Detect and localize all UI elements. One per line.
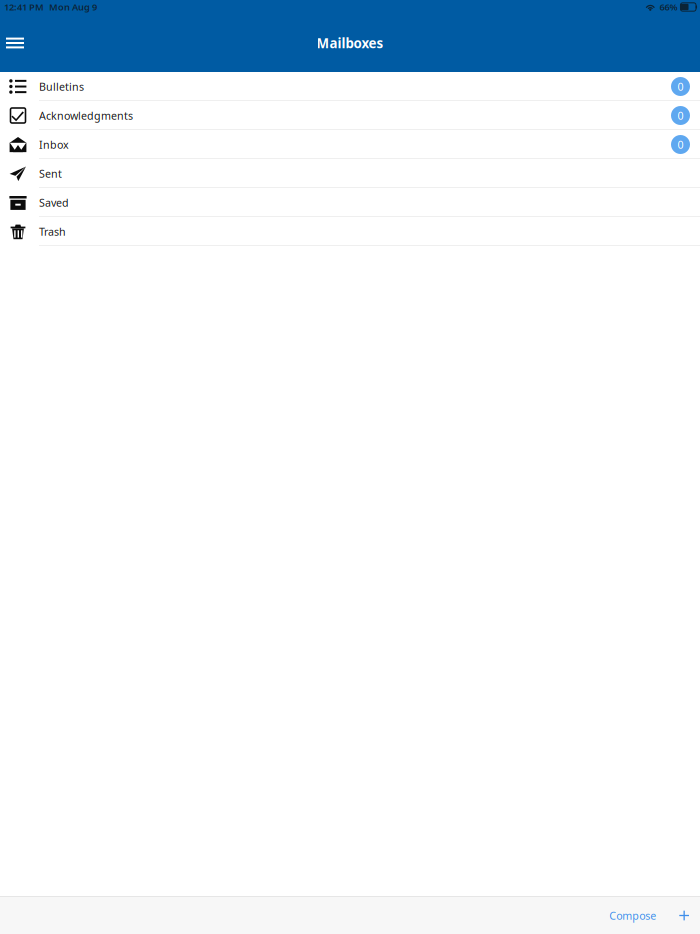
staticText: Bulletins — [39, 79, 84, 94]
button[interactable]: Menu — [0, 26, 30, 60]
button[interactable]: Trash — [0, 217, 700, 246]
staticText: Sent — [39, 166, 62, 181]
button[interactable]: Inbox — [0, 130, 700, 159]
staticText: Mailboxes — [316, 34, 383, 52]
staticText: 66% — [659, 1, 677, 13]
button[interactable]: New message — [664, 902, 700, 929]
staticText: 0 — [677, 108, 683, 123]
button[interactable]: Compose — [601, 899, 664, 932]
staticText: Compose — [609, 908, 656, 923]
staticText: Acknowledgments — [39, 108, 133, 123]
staticText: Inbox — [39, 137, 69, 152]
button[interactable]: Saved — [0, 188, 700, 217]
staticText: 12:41 PM — [4, 1, 44, 13]
button[interactable]: Acknowledgments — [0, 101, 700, 130]
staticText: Trash — [39, 224, 66, 239]
staticText: 0 — [677, 137, 683, 152]
button[interactable]: Bulletins — [0, 72, 700, 101]
button[interactable]: Sent — [0, 159, 700, 188]
staticText: 0 — [677, 79, 683, 94]
staticText: Saved — [39, 195, 69, 210]
staticText: Mon Aug 9 — [49, 1, 97, 13]
